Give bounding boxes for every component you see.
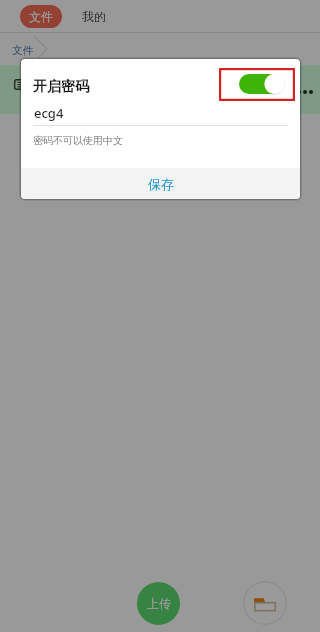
button[interactable]: New folder — [243, 581, 287, 625]
button[interactable]: More options — [0, 65, 320, 114]
staticText: 上传 — [147, 596, 171, 611]
staticText: 文件 — [29, 9, 53, 24]
button[interactable]: More options — [291, 70, 319, 110]
button[interactable]: 我的 — [78, 3, 110, 30]
staticText: 保存 — [148, 176, 174, 192]
button[interactable]: Enable password toggle — [219, 68, 295, 101]
staticText: ecg4 — [34, 104, 64, 122]
button[interactable]: 文件 — [0, 43, 33, 56]
button[interactable]: 保存 — [21, 168, 300, 199]
staticText: 密码不可以使用中文 — [33, 134, 123, 147]
button[interactable]: 上传 — [137, 582, 180, 625]
button[interactable]: 文件 — [20, 5, 62, 28]
staticText: 文件 — [12, 44, 33, 57]
staticText: 开启密码 — [33, 78, 89, 96]
staticText: 我的 — [82, 9, 106, 24]
